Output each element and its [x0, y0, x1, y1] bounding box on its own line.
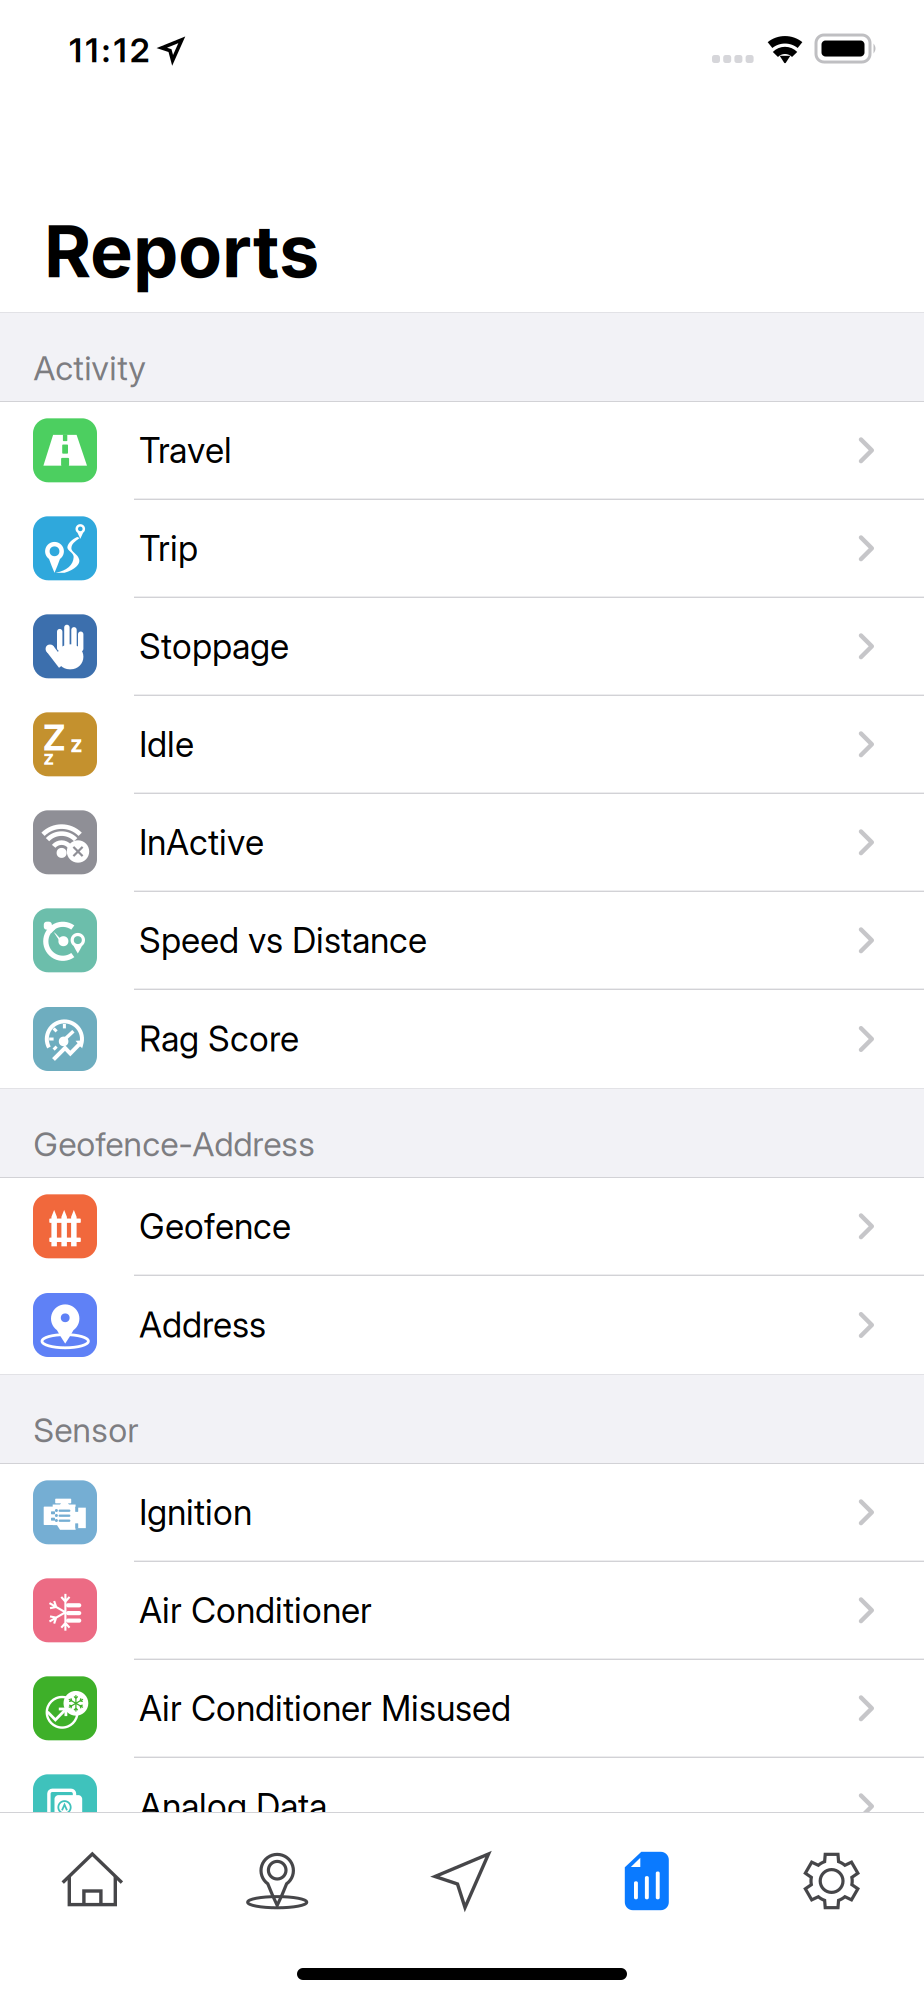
staticText: 2 [130, 30, 150, 70]
staticText: : [101, 30, 110, 70]
button[interactable]: Stoppage [0, 598, 924, 696]
staticText: Air Conditioner Misused [139, 1687, 511, 1729]
button[interactable]: Z [0, 696, 924, 794]
button[interactable]: Air Conditioner Misused [0, 1660, 924, 1758]
button[interactable]: Analog Data [0, 1758, 924, 1856]
button[interactable]: Ignition [0, 1464, 924, 1562]
staticText: Geofence-Address [33, 1124, 315, 1164]
staticText: Rag Score [139, 1018, 299, 1060]
staticText: Activity [33, 348, 146, 388]
button[interactable]: Speed vs Distance [0, 892, 924, 990]
button[interactable]: InActive [0, 794, 924, 892]
staticText: z [70, 730, 83, 758]
staticText: Travel [139, 429, 232, 471]
staticText: Z [43, 717, 65, 759]
button[interactable]: Settings [739, 1813, 924, 1949]
staticText: InActive [139, 821, 264, 863]
staticText: Analog Data [139, 1785, 327, 1827]
button[interactable]: Reports [554, 1813, 739, 1949]
button[interactable]: Travel [0, 402, 924, 500]
staticText: Reports [44, 208, 319, 295]
button[interactable]: Air Conditioner [0, 1562, 924, 1660]
staticText: Idle [139, 723, 194, 765]
staticText: Sensor [33, 1410, 138, 1450]
staticText: Address [139, 1304, 266, 1346]
button[interactable]: Geofence [0, 1178, 924, 1276]
button[interactable]: Places [185, 1813, 370, 1949]
staticText: 1 [69, 30, 82, 70]
button[interactable]: Home [0, 1813, 185, 1949]
staticText: 1 [114, 30, 127, 70]
button[interactable]: Track [370, 1813, 554, 1949]
staticText: Ignition [139, 1491, 252, 1533]
staticText: Geofence [139, 1205, 291, 1247]
button[interactable]: Address [0, 1276, 924, 1374]
staticText: Air Conditioner [139, 1589, 372, 1631]
staticText: Stoppage [139, 625, 289, 667]
button[interactable]: Trip [0, 500, 924, 598]
staticText: Speed vs Distance [139, 919, 427, 961]
staticText: Trip [139, 527, 198, 569]
staticText: 1 [85, 30, 98, 70]
button[interactable]: Rag Score [0, 990, 924, 1088]
staticText: z [43, 745, 54, 769]
